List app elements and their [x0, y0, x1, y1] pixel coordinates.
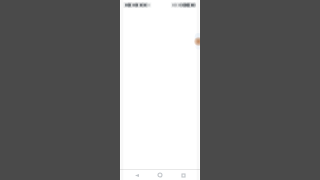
other: Status: [172, 0, 197, 11]
button[interactable]: Home: [154, 170, 166, 180]
button[interactable]: Recent apps: [177, 170, 189, 180]
other: Notifications: [125, 0, 150, 11]
button[interactable]: Back: [131, 170, 143, 180]
